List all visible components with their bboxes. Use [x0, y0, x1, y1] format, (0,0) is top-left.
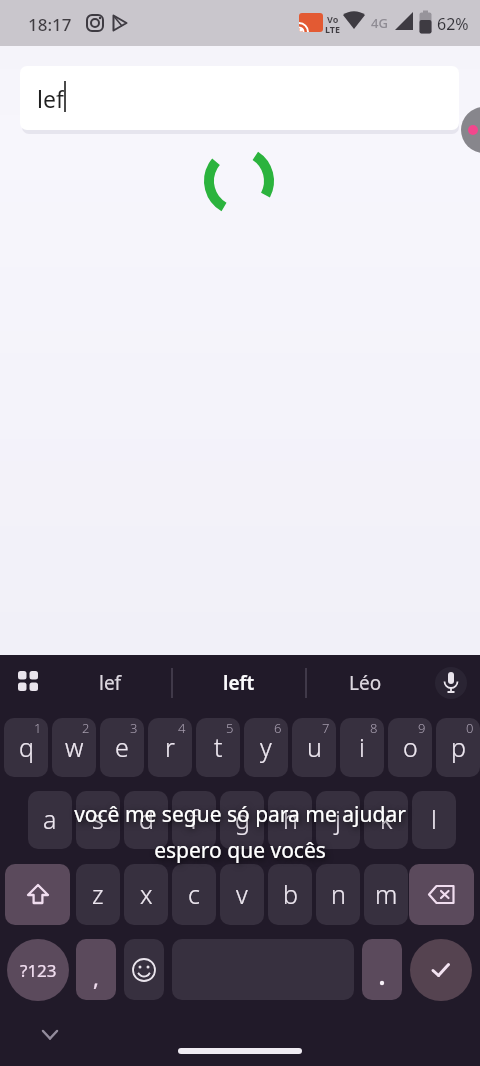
button[interactable]: o: [388, 718, 432, 777]
staticText: left: [223, 670, 255, 696]
staticText: 4G: [371, 14, 388, 32]
staticText: i: [359, 730, 365, 764]
staticText: k: [380, 802, 393, 836]
button[interactable]: m: [364, 864, 408, 925]
button[interactable]: [409, 864, 474, 925]
staticText: 62%: [437, 13, 469, 35]
staticText: ,: [93, 962, 99, 992]
staticText: l: [431, 802, 437, 836]
staticText: v: [236, 877, 248, 911]
staticText: t: [214, 730, 223, 764]
staticText: y: [260, 730, 272, 764]
button[interactable]: s: [76, 791, 120, 849]
button[interactable]: [362, 939, 402, 1000]
staticText: ?123: [20, 959, 57, 982]
button[interactable]: left: [204, 666, 274, 700]
button[interactable]: i: [340, 718, 384, 777]
button[interactable]: Léo: [330, 666, 400, 700]
staticText: 8: [370, 719, 378, 737]
staticText: 18:17: [28, 13, 72, 36]
staticText: 6: [274, 719, 282, 737]
button[interactable]: u: [292, 718, 336, 777]
button[interactable]: f: [172, 791, 216, 849]
button[interactable]: p: [436, 718, 480, 777]
staticText: o: [403, 730, 418, 764]
staticText: w: [65, 730, 84, 764]
staticText: 1: [34, 719, 42, 737]
button[interactable]: d: [124, 791, 168, 849]
staticText: Vo: [327, 13, 339, 25]
button[interactable]: n: [316, 864, 360, 925]
button[interactable]: j: [316, 791, 360, 849]
staticText: lef: [37, 83, 64, 114]
staticText: espero que vocês: [0, 836, 480, 865]
button[interactable]: h: [268, 791, 312, 849]
staticText: x: [140, 877, 153, 911]
staticText: 2: [82, 719, 90, 737]
button[interactable]: w: [52, 718, 96, 777]
staticText: Léo: [349, 670, 382, 696]
staticText: e: [115, 730, 129, 764]
staticText: 3: [130, 719, 138, 737]
staticText: 4: [178, 719, 186, 737]
button[interactable]: y: [244, 718, 288, 777]
staticText: d: [139, 802, 154, 836]
button[interactable]: z: [76, 864, 120, 925]
button[interactable]: [410, 939, 472, 1001]
staticText: h: [283, 802, 298, 836]
button[interactable]: ?123: [7, 939, 69, 1001]
button[interactable]: v: [220, 864, 264, 925]
button[interactable]: c: [172, 864, 216, 925]
staticText: LTE: [325, 23, 341, 35]
button[interactable]: lef: [75, 666, 145, 700]
staticText: r: [165, 730, 175, 764]
staticText: b: [283, 877, 298, 911]
staticText: f: [190, 802, 198, 836]
button[interactable]: [124, 939, 164, 1000]
button[interactable]: g: [220, 791, 264, 849]
staticText: p: [451, 730, 466, 764]
staticText: 9: [418, 719, 426, 737]
button[interactable]: [435, 667, 467, 699]
button[interactable]: r: [148, 718, 192, 777]
button[interactable]: [178, 1048, 302, 1054]
button[interactable]: e: [100, 718, 144, 777]
staticText: n: [331, 877, 346, 911]
button[interactable]: q: [4, 718, 48, 777]
button[interactable]: k: [364, 791, 408, 849]
button[interactable]: [461, 107, 480, 153]
staticText: z: [92, 877, 104, 911]
staticText: você me segue só para me ajudar: [0, 800, 480, 829]
button[interactable]: lef: [20, 66, 459, 130]
button[interactable]: x: [124, 864, 168, 925]
button[interactable]: l: [412, 791, 456, 849]
staticText: 5: [226, 719, 234, 737]
staticText: a: [43, 802, 57, 836]
staticText: q: [19, 730, 34, 764]
button[interactable]: a: [28, 791, 72, 849]
staticText: 7: [322, 719, 330, 737]
staticText: lef: [99, 670, 122, 696]
staticText: u: [307, 730, 322, 764]
button[interactable]: ,: [76, 939, 116, 1000]
button[interactable]: b: [268, 864, 312, 925]
staticText: s: [92, 802, 104, 836]
staticText: j: [335, 802, 341, 836]
staticText: c: [188, 877, 200, 911]
button[interactable]: t: [196, 718, 240, 777]
staticText: 0: [466, 719, 474, 737]
staticText: m: [375, 877, 398, 911]
staticText: g: [235, 802, 250, 836]
button[interactable]: [5, 864, 70, 925]
